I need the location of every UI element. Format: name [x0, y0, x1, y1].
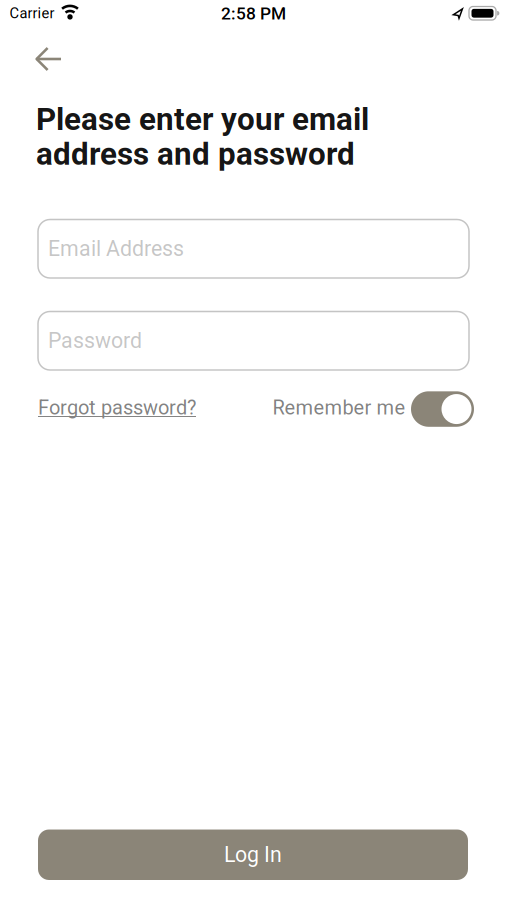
staticText: Email Address	[48, 236, 184, 261]
button[interactable]: Remember me	[411, 391, 474, 427]
staticText: Carrier	[9, 5, 54, 22]
staticText: 2:58 PM	[221, 3, 286, 24]
button[interactable]: Log In	[38, 829, 468, 880]
staticText: Forgot password?	[38, 396, 196, 419]
button[interactable]: Back	[33, 45, 63, 73]
staticText: Remember me	[272, 396, 405, 419]
staticText: Please enter your email address and pass…	[36, 101, 369, 172]
button[interactable]: Forgot password?	[38, 396, 196, 419]
button[interactable]: Password	[38, 311, 469, 370]
staticText: Password	[48, 328, 142, 353]
staticText: Log In	[224, 842, 282, 867]
button[interactable]: Email Address	[38, 219, 469, 278]
